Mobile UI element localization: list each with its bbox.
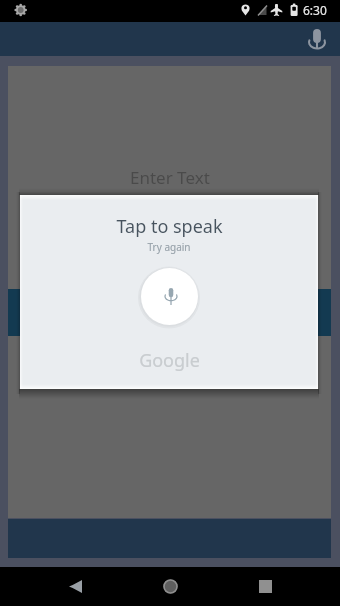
staticText: 6:30 [303, 2, 327, 18]
button[interactable]: Voice input [302, 24, 332, 54]
button[interactable]: Home [149, 567, 191, 606]
staticText: Tap to speak [116, 214, 223, 239]
button[interactable]: Recents [244, 567, 286, 606]
button[interactable]: Tap to speak [141, 268, 198, 325]
staticText: Google [139, 348, 200, 373]
button[interactable]: Back [54, 567, 96, 606]
staticText: Enter Text [130, 166, 210, 189]
staticText: Try again [147, 240, 191, 254]
button[interactable] [8, 289, 331, 336]
